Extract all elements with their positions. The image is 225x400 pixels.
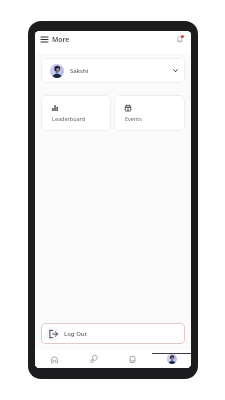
button[interactable]: Menu [40, 35, 48, 43]
button[interactable]: Home [35, 350, 74, 368]
button[interactable]: Profile [152, 350, 191, 368]
button[interactable]: Sakshi [41, 58, 185, 83]
staticText: Log Out [64, 330, 87, 338]
staticText: Events [125, 115, 142, 122]
button[interactable]: Docs [113, 350, 152, 368]
button[interactable]: Leaderboard [41, 95, 111, 131]
staticText: Sakshi [70, 67, 89, 75]
button[interactable]: Log Out [41, 323, 185, 344]
staticText: More [52, 35, 70, 44]
button[interactable]: Notifications [175, 34, 185, 44]
button[interactable]: Search [74, 350, 113, 368]
button[interactable]: Events [114, 95, 185, 131]
staticText: Leaderboard [52, 115, 86, 122]
